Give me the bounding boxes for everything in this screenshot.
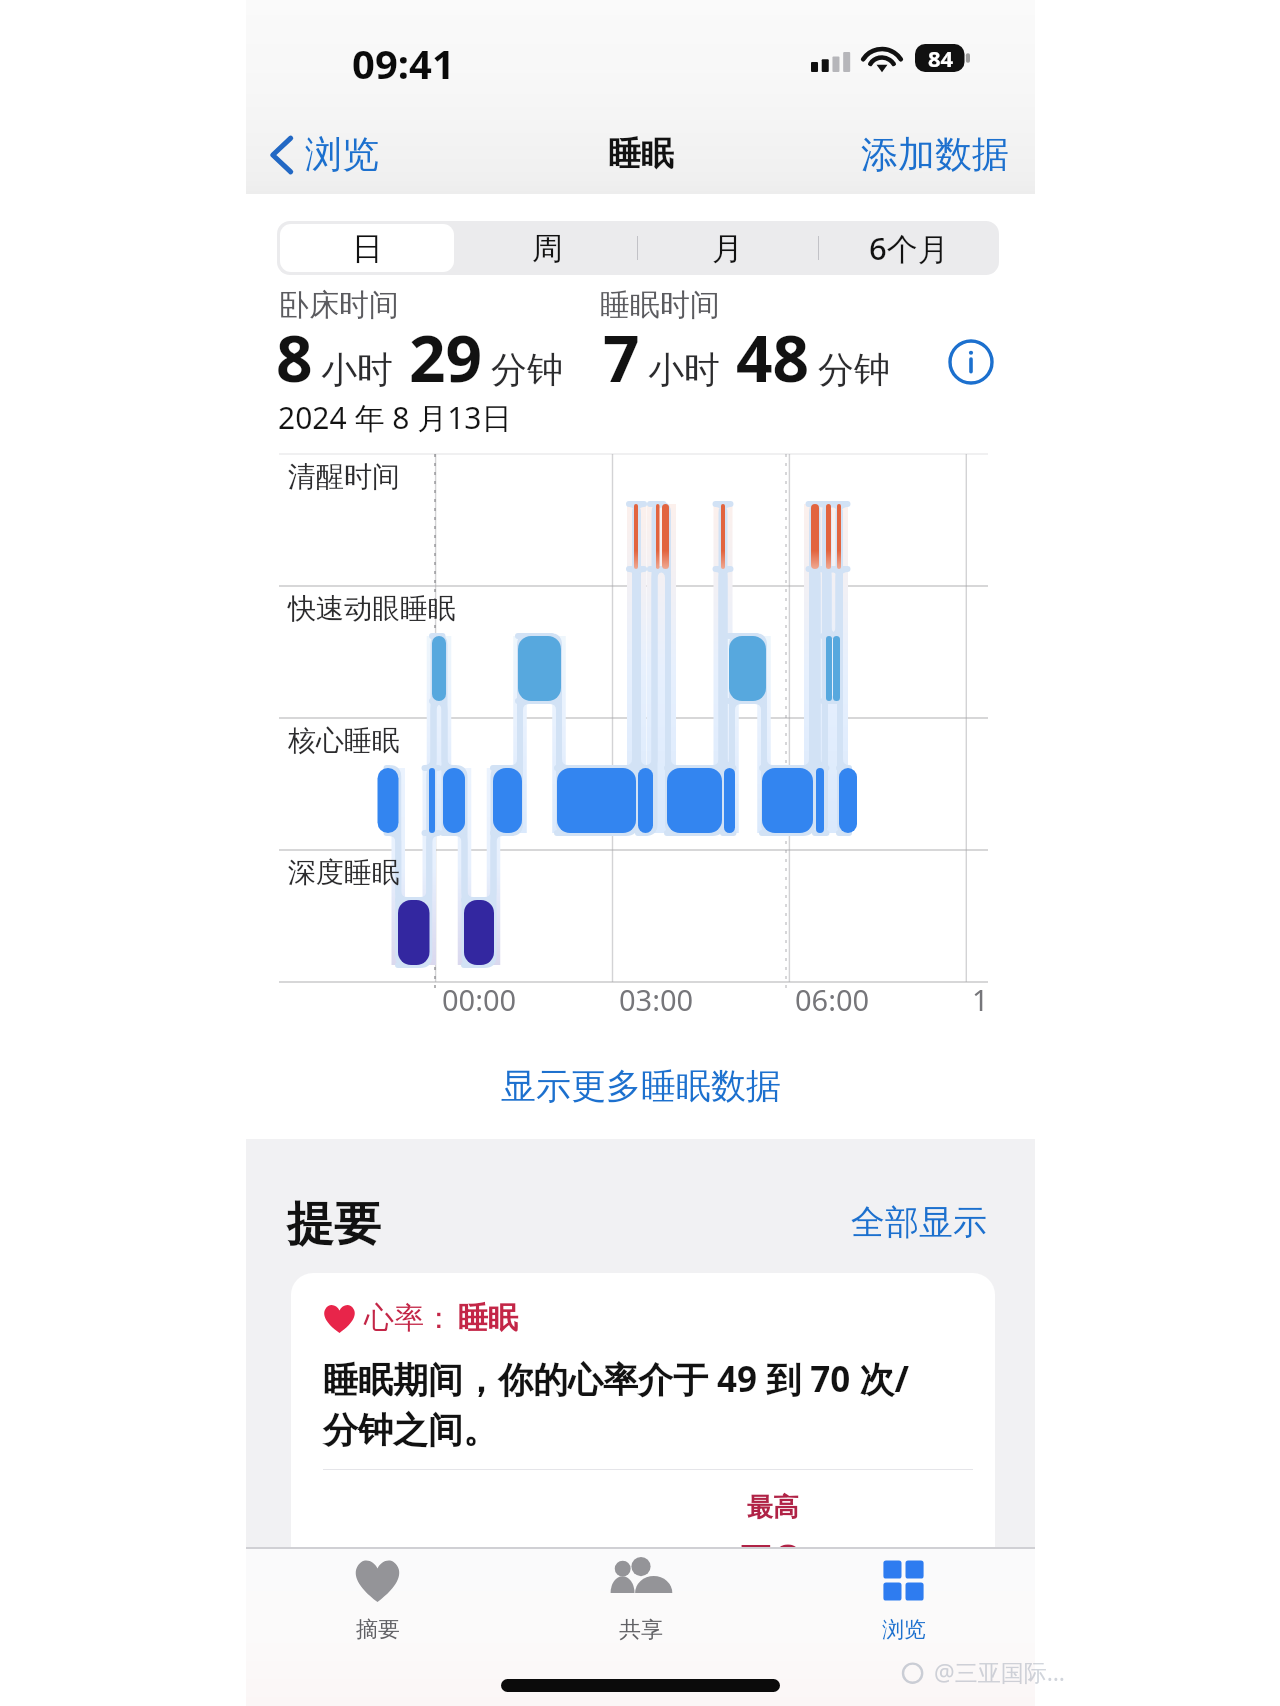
- staticText: 1: [972, 980, 989, 1019]
- staticText: 周: [532, 229, 563, 268]
- staticText: 月: [712, 229, 743, 268]
- button[interactable]: 睡眠阶段图表: [246, 442, 1035, 990]
- staticText: 00:00: [442, 980, 517, 1019]
- staticText: 日: [352, 229, 383, 268]
- staticText: 小时: [321, 347, 393, 392]
- button[interactable]: 日: [277, 221, 457, 275]
- staticText: 小时: [648, 347, 720, 392]
- staticText: 核心睡眠: [288, 723, 400, 758]
- staticText: 睡眠时间: [600, 286, 720, 324]
- staticText: 09:41: [352, 36, 455, 90]
- button[interactable]: 浏览: [262, 123, 387, 186]
- staticText: 浏览: [305, 131, 379, 178]
- staticText: 卧床时间: [279, 286, 399, 324]
- staticText: 清醒时间: [288, 459, 400, 494]
- button[interactable]: 显示更多睡眠数据: [246, 1056, 1035, 1116]
- staticText: 最高: [747, 1491, 799, 1524]
- staticText: 摘要: [356, 1616, 400, 1644]
- staticText: 分钟: [491, 347, 563, 392]
- staticText: 8: [276, 314, 313, 401]
- staticText: 6个月: [869, 227, 949, 269]
- button[interactable]: 添加数据: [855, 123, 1015, 186]
- staticText: 48: [736, 314, 810, 401]
- staticText: @三亚国际…: [934, 1656, 1065, 1687]
- staticText: 添加数据: [861, 131, 1009, 178]
- button[interactable]: 心率：: [291, 1273, 995, 1706]
- staticText: 全部显示: [851, 1201, 987, 1244]
- staticText: 7: [603, 314, 640, 401]
- staticText: 29: [409, 314, 483, 401]
- button[interactable]: 全部显示: [847, 1197, 991, 1248]
- staticText: 03:00: [619, 980, 694, 1019]
- staticText: 睡眠: [608, 133, 674, 175]
- button[interactable]: 摘要: [246, 1549, 509, 1650]
- staticText: 快速动眼睡眠: [288, 591, 456, 626]
- staticText: 共享: [619, 1616, 663, 1644]
- button[interactable]: 周: [457, 221, 637, 275]
- staticText: 心率：: [364, 1299, 454, 1337]
- button[interactable]: 月: [637, 221, 818, 275]
- staticText: 睡眠期间，你的心率介于 49 到 70 次/ 分钟之间。: [323, 1355, 910, 1453]
- staticText: 2024 年 8 月13日: [278, 397, 512, 438]
- staticText: 深度睡眠: [288, 855, 400, 890]
- staticText: 84: [928, 43, 954, 71]
- button[interactable]: 共享: [509, 1549, 772, 1650]
- staticText: 浏览: [882, 1616, 926, 1644]
- button[interactable]: 6个月: [818, 221, 999, 275]
- staticText: 06:00: [795, 980, 870, 1019]
- staticText: 显示更多睡眠数据: [501, 1064, 781, 1108]
- button[interactable]: Info: [947, 338, 995, 386]
- staticText: 睡眠: [458, 1299, 518, 1337]
- button[interactable]: 浏览: [772, 1549, 1035, 1650]
- staticText: 70: [740, 1525, 805, 1601]
- staticText: 分钟: [818, 347, 890, 392]
- staticText: 提要: [287, 1195, 381, 1254]
